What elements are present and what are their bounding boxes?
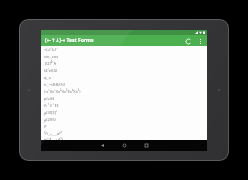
staticText: ∫(2)⁰⁺ℏ [44,61,56,66]
button[interactable]: ∫(2)⁰⁺ℏ [41,60,207,67]
staticText: <(ℯ)⁺(ℯ)ᐨ [44,47,58,52]
button[interactable]: ℙ [41,123,207,130]
button[interactable]: More options [196,37,204,45]
button[interactable]: (ᐧx⁺)(x⁺)(x²)(x³)(x⁴)(x⁵) [41,88,207,95]
button[interactable]: q‿s [41,74,207,81]
staticText: ℵ‿→∂(ℝ)(ℕ) [44,82,66,87]
button[interactable]: (4⁺e)(4) [41,67,207,74]
staticText: q‿s [44,75,51,80]
staticText: ℊ(2)(5) [44,117,56,122]
button[interactable]: ᵀℎ‿ᵤ‿‿uⁿ¹ [41,130,207,137]
button[interactable]: p(ℯ)tℓ [41,95,207,102]
staticText: ᵀℎ‿ᵤ‿‿uⁿ¹ [44,131,63,136]
button[interactable]: ℊ(3)[3]⁺ [41,109,207,116]
button[interactable]: ℊ(2)(5) [41,116,207,123]
staticText: ℏ ¹ ℓ ⁺ℓℓ [44,103,59,108]
button[interactable]: sin‿cos [41,53,207,60]
staticText: (←↑↓)→ Test Forms [45,37,94,44]
button[interactable]: Home [113,140,135,151]
staticText: ℙ [44,124,47,129]
button[interactable]: ℵ‿→∂(ℝ)(ℕ) [41,81,207,88]
button[interactable]: <(ℯ)⁺(ℯ)ᐨ [41,46,207,53]
staticText: (ᐧx⁺)(x⁺)(x²)(x³)(x⁴)(x⁵) [44,89,81,94]
button[interactable]: n(⁻4‿‿uⁿ¹) [41,137,207,140]
staticText: (4⁺e)(4) [44,68,57,73]
staticText: p(ℯ)tℓ [44,96,55,101]
staticText: sin‿cos [44,54,59,59]
staticText: ℊ(3)[3]⁺ [44,110,58,115]
button[interactable]: Refresh [184,37,192,45]
button[interactable]: Back [91,140,113,151]
staticText: n(⁻4‿‿uⁿ¹) [44,137,63,140]
button[interactable]: Recent apps [135,140,157,151]
button[interactable]: ℏ ¹ ℓ ⁺ℓℓ [41,102,207,109]
